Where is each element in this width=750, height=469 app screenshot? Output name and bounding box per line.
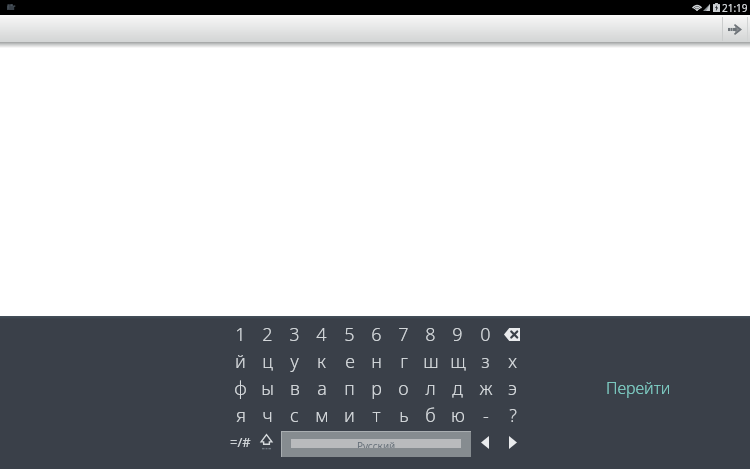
staticText: - bbox=[483, 403, 489, 428]
staticText: в bbox=[290, 376, 300, 401]
staticText: ы bbox=[261, 376, 274, 401]
button[interactable]: 9 bbox=[444, 321, 471, 347]
staticText: 8 bbox=[425, 322, 436, 347]
button[interactable]: г bbox=[390, 348, 417, 374]
staticText: д bbox=[452, 376, 463, 401]
staticText: й bbox=[235, 349, 246, 374]
button[interactable]: т bbox=[363, 402, 390, 428]
button[interactable]: Move cursor right bbox=[500, 429, 526, 455]
button[interactable]: 3 bbox=[281, 321, 308, 347]
button[interactable]: 6 bbox=[363, 321, 390, 347]
button[interactable]: д bbox=[444, 375, 471, 401]
button[interactable]: л bbox=[417, 375, 444, 401]
button[interactable]: е bbox=[336, 348, 363, 374]
button[interactable]: щ bbox=[444, 348, 471, 374]
button[interactable]: 1 bbox=[227, 321, 254, 347]
button[interactable]: ц bbox=[254, 348, 281, 374]
staticText: 6 bbox=[371, 322, 382, 347]
button[interactable]: с bbox=[281, 402, 308, 428]
button[interactable]: ш bbox=[417, 348, 444, 374]
button[interactable]: 4 bbox=[308, 321, 335, 347]
button[interactable]: б bbox=[417, 402, 444, 428]
staticText: 0 bbox=[480, 322, 491, 347]
staticText: р bbox=[371, 376, 382, 401]
button[interactable]: ю bbox=[444, 402, 471, 428]
staticText: =/# bbox=[230, 433, 251, 451]
staticText: Перейти bbox=[606, 377, 671, 399]
staticText: 21:19 bbox=[722, 1, 748, 15]
staticText: ? bbox=[509, 403, 517, 428]
button[interactable]: 2 bbox=[254, 321, 281, 347]
button[interactable]: ж bbox=[472, 375, 499, 401]
staticText: ж bbox=[479, 376, 493, 401]
staticText: 5 bbox=[344, 322, 355, 347]
staticText: л bbox=[425, 376, 436, 401]
staticText: з bbox=[481, 349, 490, 374]
staticText: е bbox=[345, 349, 355, 374]
staticText: о bbox=[398, 376, 409, 401]
button[interactable]: а bbox=[308, 375, 335, 401]
staticText: к bbox=[317, 349, 326, 374]
staticText: с bbox=[290, 403, 299, 428]
button[interactable]: я bbox=[227, 402, 254, 428]
button[interactable]: ч bbox=[254, 402, 281, 428]
button[interactable]: Перейти bbox=[588, 374, 688, 402]
staticText: т bbox=[372, 403, 381, 428]
button[interactable]: к bbox=[308, 348, 335, 374]
button[interactable]: в bbox=[281, 375, 308, 401]
button[interactable]: Backspace bbox=[498, 321, 526, 347]
button[interactable]: н bbox=[363, 348, 390, 374]
staticText: 9 bbox=[452, 322, 463, 347]
button[interactable]: ф bbox=[227, 375, 254, 401]
button[interactable]: Shift bbox=[253, 429, 279, 455]
button[interactable]: =/# bbox=[226, 429, 254, 455]
staticText: ю bbox=[451, 403, 465, 428]
button[interactable]: ? bbox=[499, 402, 526, 428]
button[interactable]: п bbox=[336, 375, 363, 401]
staticText: ф bbox=[234, 376, 247, 401]
button[interactable]: 7 bbox=[390, 321, 417, 347]
button[interactable]: о bbox=[390, 375, 417, 401]
staticText: н bbox=[371, 349, 382, 374]
button[interactable]: з bbox=[472, 348, 499, 374]
button[interactable]: у bbox=[281, 348, 308, 374]
staticText: ч bbox=[262, 403, 273, 428]
button[interactable]: ы bbox=[254, 375, 281, 401]
staticText: 4 bbox=[316, 322, 327, 347]
staticText: щ bbox=[450, 349, 466, 374]
staticText: х bbox=[508, 349, 517, 374]
staticText: и bbox=[344, 403, 355, 428]
staticText: 1 bbox=[235, 322, 246, 347]
staticText: ц bbox=[262, 349, 273, 374]
button[interactable]: Go bbox=[723, 15, 747, 43]
button[interactable]: э bbox=[499, 375, 526, 401]
button[interactable]: и bbox=[336, 402, 363, 428]
staticText: у bbox=[290, 349, 299, 374]
staticText: 7 bbox=[398, 322, 409, 347]
button[interactable]: 8 bbox=[417, 321, 444, 347]
staticText: ш bbox=[423, 349, 439, 374]
staticText: а bbox=[317, 376, 327, 401]
button[interactable]: Move cursor left bbox=[472, 429, 498, 455]
button[interactable]: ь bbox=[390, 402, 417, 428]
staticText: м bbox=[315, 403, 329, 428]
button[interactable]: - bbox=[472, 402, 499, 428]
staticText: Русский bbox=[357, 439, 396, 448]
staticText: п bbox=[344, 376, 355, 401]
button[interactable]: й bbox=[227, 348, 254, 374]
staticText: э bbox=[508, 376, 517, 401]
button[interactable]: м bbox=[308, 402, 335, 428]
button[interactable]: р bbox=[363, 375, 390, 401]
button[interactable]: 0 bbox=[472, 321, 499, 347]
staticText: б bbox=[425, 403, 436, 428]
staticText: 2 bbox=[262, 322, 273, 347]
staticText: 3 bbox=[289, 322, 300, 347]
staticText: я bbox=[236, 403, 246, 428]
button[interactable]: 5 bbox=[336, 321, 363, 347]
button[interactable]: х bbox=[499, 348, 526, 374]
staticText: г bbox=[400, 349, 408, 374]
button[interactable]: Space bbox=[281, 431, 471, 457]
staticText: ь bbox=[399, 403, 409, 428]
